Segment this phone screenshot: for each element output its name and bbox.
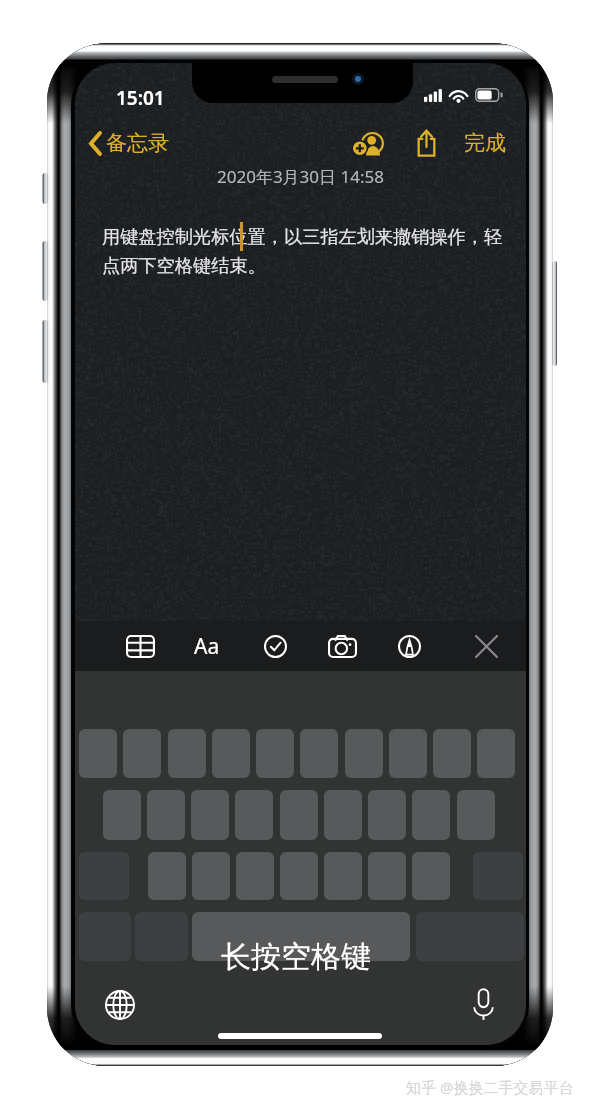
button[interactable]: Camera <box>321 621 363 671</box>
button[interactable] <box>345 729 383 778</box>
button[interactable] <box>389 729 427 778</box>
button[interactable] <box>192 852 230 900</box>
button[interactable] <box>433 729 471 778</box>
button[interactable]: Space <box>192 912 410 961</box>
button[interactable] <box>168 729 206 778</box>
button[interactable] <box>191 790 229 840</box>
button[interactable] <box>412 852 450 900</box>
button[interactable] <box>148 852 186 900</box>
staticText: 知乎 @换换二手交易平台 <box>406 1077 574 1097</box>
staticText: 15:01 <box>116 85 165 111</box>
button[interactable] <box>280 790 318 840</box>
button[interactable] <box>79 729 117 778</box>
button[interactable] <box>212 729 250 778</box>
button[interactable] <box>256 729 294 778</box>
button[interactable] <box>457 790 495 840</box>
button[interactable] <box>123 729 161 778</box>
button[interactable] <box>236 852 274 900</box>
button[interactable]: Dictation <box>461 982 505 1026</box>
staticText: 用键盘控制光标位置，以三指左划来撤销操作，轻点两下空格键结束。 <box>102 225 506 278</box>
button[interactable] <box>300 729 338 778</box>
button[interactable] <box>412 790 450 840</box>
button[interactable]: 备忘录 <box>80 122 179 164</box>
staticText: 完成 <box>464 130 506 156</box>
button[interactable] <box>368 852 406 900</box>
button[interactable]: Markup <box>388 621 430 671</box>
button[interactable] <box>324 790 362 840</box>
button[interactable] <box>235 790 273 840</box>
button[interactable] <box>477 729 515 778</box>
staticText: 备忘录 <box>106 130 169 156</box>
button[interactable] <box>280 852 318 900</box>
button[interactable]: Share <box>403 122 449 164</box>
button[interactable]: Table <box>119 621 161 671</box>
staticText: 长按空格键 <box>221 938 371 976</box>
button[interactable]: 完成 <box>458 122 511 164</box>
button[interactable] <box>147 790 185 840</box>
button[interactable]: Add people <box>344 122 392 164</box>
button[interactable]: Close <box>465 621 507 671</box>
button[interactable]: Checklist <box>254 621 296 671</box>
button[interactable]: Format text <box>186 621 228 671</box>
button[interactable]: Switch keyboard <box>98 983 142 1027</box>
staticText: 2020年3月30日 14:58 <box>217 165 384 188</box>
button[interactable] <box>324 852 362 900</box>
button[interactable] <box>368 790 406 840</box>
staticText: Aa <box>194 632 220 661</box>
button[interactable] <box>103 790 141 840</box>
